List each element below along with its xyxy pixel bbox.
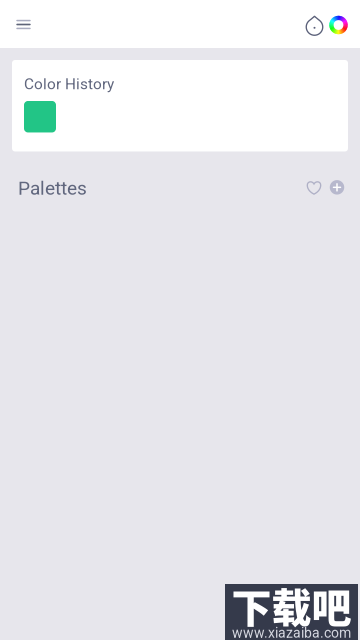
button[interactable]: Eyedropper [297, 0, 327, 48]
button[interactable]: Menu [0, 0, 44, 48]
button[interactable]: Favorites [304, 177, 326, 199]
staticText: www.xiazaiba.com [232, 625, 351, 640]
button[interactable]: Add palette [326, 177, 348, 199]
staticText: Palettes [18, 177, 87, 199]
button[interactable]: Color picker [327, 0, 357, 48]
staticText: Color History [24, 75, 114, 93]
staticText: 下载吧 [231, 576, 351, 634]
